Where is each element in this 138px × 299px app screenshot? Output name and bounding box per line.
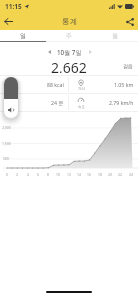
- staticText: 22: [118, 172, 122, 177]
- staticText: 14: [77, 172, 81, 177]
- button[interactable]: Back: [0, 13, 17, 30]
- staticText: 11:15: [5, 2, 22, 11]
- staticText: 20: [108, 172, 112, 177]
- staticText: 주: [66, 32, 72, 40]
- staticText: 88 kcal: [47, 81, 64, 88]
- staticText: 10: [56, 172, 60, 177]
- staticText: 2,000: [2, 125, 11, 130]
- button[interactable]: 거리: [69, 76, 138, 93]
- staticText: 10월 7일: [57, 48, 82, 56]
- button[interactable]: 주: [46, 30, 92, 42]
- staticText: 월: [112, 32, 118, 40]
- staticText: 1.05 km: [114, 81, 134, 88]
- button[interactable]: 일: [0, 30, 46, 42]
- button[interactable]: Volume: [4, 77, 18, 118]
- staticText: 통계: [62, 17, 77, 26]
- button[interactable]: 칼로리: [0, 76, 68, 93]
- staticText: 18: [98, 172, 102, 177]
- staticText: 1,500: [2, 141, 11, 146]
- button[interactable]: 시간: [0, 94, 68, 111]
- staticText: 24: [129, 172, 133, 177]
- staticText: 0: [6, 172, 8, 177]
- staticText: 시간: [10, 105, 17, 109]
- staticText: 일: [20, 32, 26, 40]
- staticText: 칼로리: [8, 87, 19, 91]
- button[interactable]: Previous day: [44, 47, 54, 57]
- staticText: 거리: [78, 87, 85, 91]
- staticText: 16: [87, 172, 91, 177]
- staticText: 2.79 km/h: [109, 99, 134, 106]
- button[interactable]: 속도: [69, 94, 138, 111]
- button[interactable]: Next day: [85, 47, 95, 57]
- button[interactable]: Share: [121, 13, 138, 30]
- staticText: 500: [3, 156, 9, 161]
- staticText: 2: [16, 172, 18, 177]
- staticText: 4: [27, 172, 29, 177]
- staticText: 속도: [78, 105, 85, 109]
- button[interactable]: 월: [92, 30, 138, 42]
- staticText: 8: [47, 172, 49, 177]
- staticText: 6: [37, 172, 39, 177]
- staticText: 2,662: [51, 58, 87, 73]
- staticText: 24 분: [51, 99, 64, 106]
- staticText: 걸음: [123, 63, 133, 69]
- staticText: 12: [67, 172, 71, 177]
